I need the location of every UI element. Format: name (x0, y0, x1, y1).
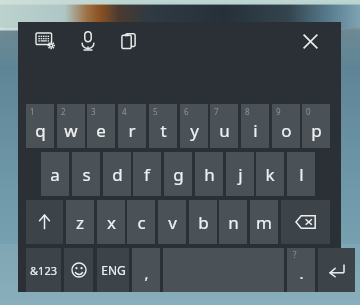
button[interactable]: f (133, 152, 161, 196)
staticText: n (228, 211, 239, 234)
staticText: . (299, 263, 304, 283)
button[interactable]: , (132, 248, 160, 292)
button[interactable]: x (97, 200, 125, 244)
button[interactable]: j (226, 152, 254, 196)
staticText: y (190, 119, 199, 142)
staticText: b (198, 211, 209, 234)
staticText: p (311, 119, 322, 142)
staticText: u (219, 119, 230, 142)
button[interactable]: g (164, 152, 192, 196)
staticText: 5 (153, 106, 158, 117)
staticText: f (144, 163, 150, 186)
staticText: j (238, 163, 243, 186)
staticText: k (265, 163, 275, 186)
staticText: l (299, 163, 304, 186)
button[interactable]: Clipboard (112, 22, 144, 60)
button[interactable]: h (195, 152, 223, 196)
staticText: d (112, 163, 123, 186)
button[interactable]: m (250, 200, 278, 244)
staticText: ? (293, 249, 297, 260)
staticText: 2 (61, 106, 66, 117)
staticText: 4 (122, 106, 127, 117)
button[interactable]: 4 (118, 104, 146, 148)
button[interactable]: &123 (26, 248, 61, 292)
button[interactable]: b (189, 200, 217, 244)
staticText: o (281, 119, 292, 142)
button[interactable]: z (66, 200, 94, 244)
button[interactable]: k (256, 152, 284, 196)
button[interactable]: Emoji (64, 248, 93, 292)
button[interactable]: Enter (318, 248, 355, 292)
button[interactable]: 0 (302, 104, 330, 148)
button[interactable]: Shift (26, 200, 63, 244)
button[interactable]: l (287, 152, 315, 196)
button[interactable]: a (41, 152, 69, 196)
staticText: 3 (91, 106, 96, 117)
button[interactable]: d (103, 152, 131, 196)
staticText: 1 (30, 106, 35, 117)
staticText: 8 (245, 106, 250, 117)
button[interactable]: Keyboard settings (29, 22, 61, 60)
button[interactable]: c (127, 200, 155, 244)
button[interactable]: ? (287, 248, 315, 292)
staticText: c (137, 211, 146, 234)
button[interactable]: 5 (149, 104, 177, 148)
staticText: v (168, 211, 177, 234)
staticText: e (96, 119, 106, 142)
staticText: 6 (184, 106, 189, 117)
staticText: 9 (276, 106, 281, 117)
staticText: &123 (30, 263, 57, 278)
button[interactable]: Voice input (72, 22, 104, 60)
staticText: r (128, 119, 136, 142)
button[interactable]: Backspace (281, 200, 330, 244)
button[interactable]: n (219, 200, 247, 244)
staticText: i (253, 119, 258, 142)
staticText: 7 (214, 106, 219, 117)
button[interactable]: s (72, 152, 100, 196)
staticText: w (64, 119, 78, 142)
staticText: g (173, 163, 184, 186)
button[interactable]: 7 (210, 104, 238, 148)
button[interactable]: 2 (57, 104, 85, 148)
button[interactable]: 3 (87, 104, 115, 148)
staticText: a (50, 163, 60, 186)
button[interactable]: 9 (272, 104, 300, 148)
button[interactable]: ENG (97, 248, 129, 292)
button[interactable]: v (158, 200, 186, 244)
staticText: m (256, 211, 272, 234)
button[interactable]: 6 (180, 104, 208, 148)
button[interactable]: 1 (26, 104, 54, 148)
staticText: 0 (306, 106, 311, 117)
staticText: z (76, 211, 84, 234)
staticText: ENG (101, 262, 126, 278)
staticText: x (107, 211, 116, 234)
staticText: , (144, 263, 149, 283)
button[interactable]: 8 (241, 104, 269, 148)
staticText: q (35, 119, 46, 142)
staticText: h (204, 163, 215, 186)
button[interactable]: Close keyboard (294, 22, 326, 60)
staticText: s (82, 163, 91, 186)
staticText: t (160, 119, 167, 142)
